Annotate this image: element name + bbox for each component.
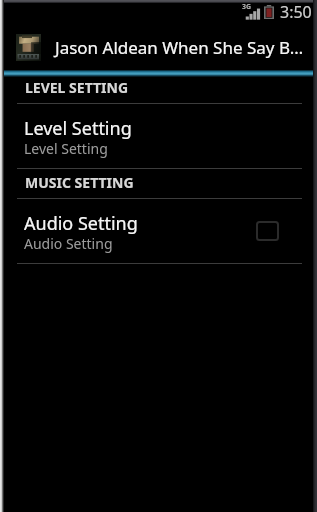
staticText: Audio Setting [24,211,138,236]
other: 3G signal strength [243,4,260,20]
button[interactable]: Level Setting [0,104,317,168]
staticText: Level Setting [24,139,108,158]
button[interactable]: Audio Setting checkbox [257,222,278,240]
button[interactable]: Audio Setting [0,199,317,263]
staticText: Level Setting [24,116,132,141]
staticText: 3G [242,2,252,12]
staticText: LEVEL SETTING [25,78,129,97]
other: Battery low [264,5,274,19]
button[interactable]: Jason Aldean When She Say B… [0,24,317,70]
staticText: MUSIC SETTING [25,173,134,192]
staticText: Audio Setting [24,234,113,253]
staticText: Jason Aldean When She Say B… [55,36,304,59]
staticText: 3:50 [280,1,312,23]
